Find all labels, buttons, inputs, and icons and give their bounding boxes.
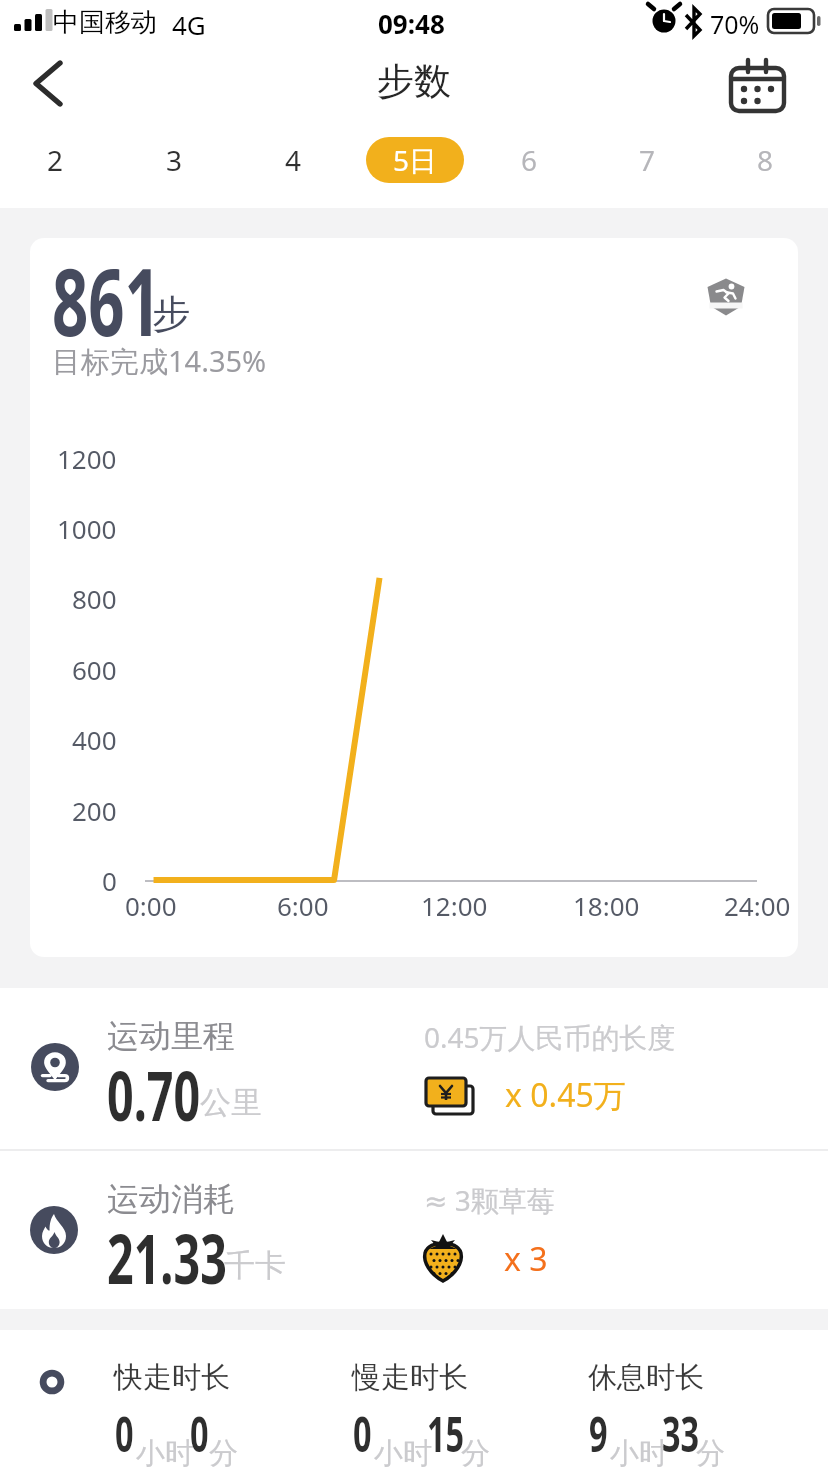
staticText: 0:00	[125, 888, 177, 923]
staticText: 小时	[136, 1435, 194, 1472]
staticText: 休息时长	[588, 1359, 704, 1396]
staticText: 运动里程	[107, 1016, 235, 1056]
staticText: 200	[72, 793, 117, 828]
staticText: 步	[152, 290, 190, 338]
staticText: 09:48	[378, 6, 445, 41]
staticText: 4G	[172, 7, 206, 42]
staticText: 70%	[710, 7, 760, 41]
staticText: 0	[353, 1401, 372, 1466]
staticText: 分	[209, 1435, 238, 1472]
staticText: x 3	[504, 1237, 548, 1281]
button[interactable]: 运动消耗	[0, 1151, 828, 1309]
staticText: 6:00	[277, 888, 329, 923]
button[interactable]: Calendar	[723, 56, 787, 120]
button[interactable]: 5日	[352, 125, 470, 195]
staticText: 2	[47, 141, 64, 179]
staticText: 9	[589, 1401, 608, 1466]
button[interactable]: 2	[0, 125, 115, 195]
staticText: 5日	[393, 141, 438, 179]
staticText: 分	[696, 1435, 725, 1472]
button[interactable]: 3	[115, 125, 234, 195]
staticText: 7	[639, 141, 656, 179]
button[interactable]: 运动里程	[0, 988, 828, 1149]
staticText: 步数	[377, 58, 451, 105]
staticText: 小时	[374, 1435, 432, 1472]
staticText: 千卡	[224, 1246, 286, 1285]
button[interactable]: 7	[588, 125, 706, 195]
staticText: 12:00	[421, 888, 488, 923]
button[interactable]: 4	[234, 125, 352, 195]
staticText: 800	[72, 581, 117, 616]
staticText: 3	[166, 141, 183, 179]
staticText: ≈ 3颗草莓	[424, 1181, 555, 1219]
staticText: 861	[52, 238, 161, 364]
staticText: x 0.45万	[505, 1073, 626, 1117]
staticText: 4	[285, 141, 302, 179]
staticText: 分	[461, 1435, 490, 1472]
staticText: 小时	[610, 1435, 668, 1472]
staticText: 33	[662, 1401, 699, 1466]
staticText: 1000	[57, 511, 117, 546]
staticText: 中国移动	[53, 6, 157, 39]
button[interactable]: 6	[470, 125, 588, 195]
staticText: 24:00	[724, 888, 791, 923]
button[interactable]: Back	[14, 50, 86, 122]
staticText: 15	[427, 1401, 464, 1466]
staticText: 0.70	[107, 1047, 200, 1141]
staticText: 慢走时长	[352, 1359, 468, 1396]
button[interactable]: 8	[706, 125, 824, 195]
staticText: 18:00	[573, 888, 640, 923]
staticText: 0	[102, 863, 117, 898]
staticText: 公里	[200, 1083, 262, 1122]
staticText: 快走时长	[114, 1359, 230, 1396]
staticText: 0	[190, 1401, 209, 1466]
staticText: 400	[72, 722, 117, 757]
staticText: 1200	[57, 441, 117, 476]
staticText: 0.45万人民币的长度	[424, 1018, 676, 1056]
staticText: 0	[115, 1401, 134, 1466]
staticText: 运动消耗	[107, 1179, 235, 1219]
staticText: 6	[521, 141, 538, 179]
staticText: 600	[72, 652, 117, 687]
staticText: 目标完成14.35%	[52, 341, 267, 381]
staticText: 8	[757, 141, 774, 179]
staticText: 21.33	[107, 1210, 227, 1304]
